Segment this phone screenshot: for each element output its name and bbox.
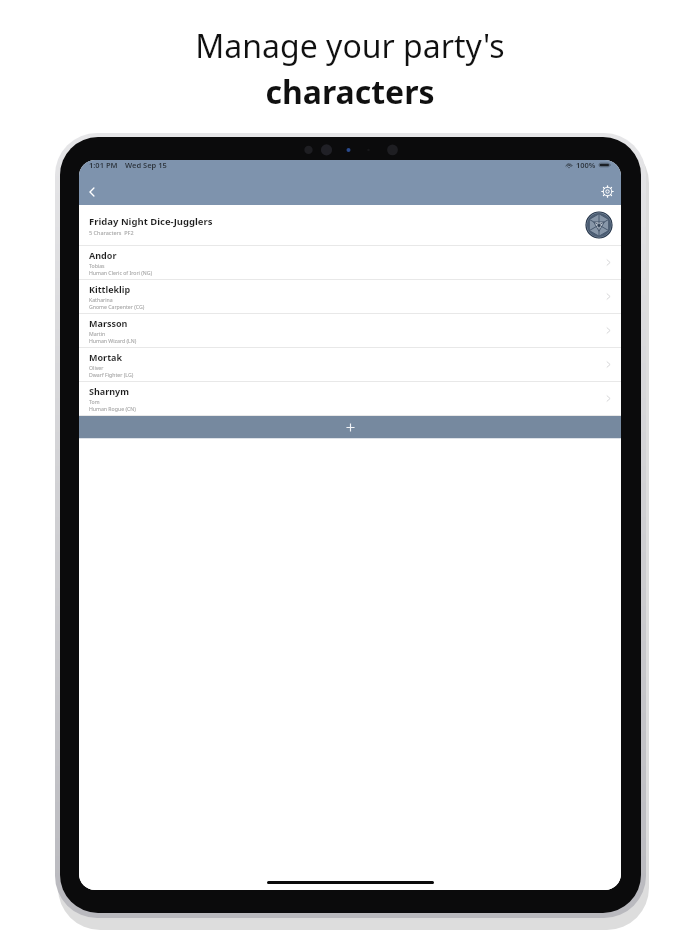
staticText: Manage your party's (195, 24, 505, 68)
staticText: Friday Night Dice-Jugglers (89, 215, 213, 228)
staticText: Kittleklip (89, 283, 131, 295)
button[interactable]: Sharnym (79, 382, 621, 415)
button[interactable]: Mortak (79, 348, 621, 381)
staticText: Mortak (89, 351, 123, 363)
button[interactable]: Marsson (79, 314, 621, 347)
staticText: Gnome Carpenter (CG) (89, 303, 145, 310)
staticText: Human Wizard (LN) (89, 337, 137, 344)
staticText: Sharnym (89, 385, 129, 397)
staticText: Andor (89, 249, 117, 261)
button[interactable]: Back (79, 178, 105, 205)
staticText: characters (265, 70, 435, 114)
staticText: Oliver (89, 364, 104, 371)
button[interactable]: Settings (593, 178, 621, 205)
staticText: Tobias (89, 262, 105, 269)
staticText: 1:01 PM (89, 160, 118, 170)
staticText: Marsson (89, 317, 128, 329)
staticText: Tom (89, 398, 100, 405)
staticText: Martin (89, 330, 106, 337)
button[interactable]: Friday Night Dice-Jugglers (79, 205, 621, 245)
staticText: Human Cleric of Irori (NG) (89, 269, 153, 276)
button[interactable]: Andor (79, 246, 621, 279)
button[interactable]: Kittleklip (79, 280, 621, 313)
staticText: Wed Sep 15 (125, 160, 167, 170)
button[interactable]: Add character (79, 416, 621, 438)
staticText: Katharina (89, 296, 113, 303)
staticText: Human Rogue (CN) (89, 405, 136, 412)
staticText: Dwarf Fighter (LG) (89, 371, 134, 378)
staticText: 100% (576, 160, 596, 170)
staticText: 5 Characters PF2 (89, 229, 134, 236)
